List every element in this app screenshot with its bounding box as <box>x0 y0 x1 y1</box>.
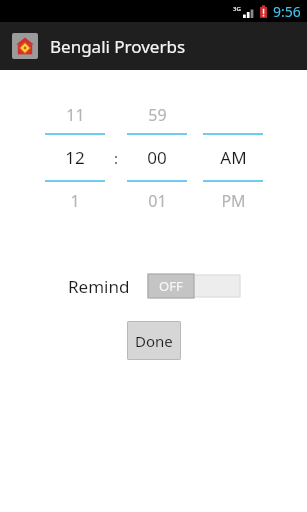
button[interactable]: 11 <box>44 96 106 133</box>
staticText: 01 <box>148 190 167 212</box>
staticText: 59 <box>148 104 167 126</box>
button[interactable]: PM <box>202 182 264 219</box>
staticText: 3G <box>233 5 241 13</box>
staticText: 1 <box>70 190 80 212</box>
staticText: PM <box>221 190 246 212</box>
button[interactable]: Done <box>127 321 181 360</box>
staticText: OFF <box>159 277 183 295</box>
staticText: 11 <box>66 104 85 126</box>
button[interactable]: AM <box>202 135 264 180</box>
button[interactable]: 00 <box>126 135 188 180</box>
staticText: Remind <box>68 275 130 298</box>
button[interactable]: 59 <box>126 96 188 133</box>
staticText: Done <box>135 331 173 351</box>
button[interactable]: Remind toggle, off <box>148 274 240 298</box>
staticText: 12 <box>65 146 85 169</box>
button[interactable]: 01 <box>126 182 188 219</box>
staticText: : <box>114 148 119 168</box>
staticText: 00 <box>147 146 167 169</box>
button[interactable]: 12 <box>44 135 106 180</box>
staticText: AM <box>220 146 247 169</box>
staticText: Bengali Proverbs <box>50 35 186 58</box>
button[interactable]: 1 <box>44 182 106 219</box>
staticText: 9:56 <box>273 2 301 21</box>
